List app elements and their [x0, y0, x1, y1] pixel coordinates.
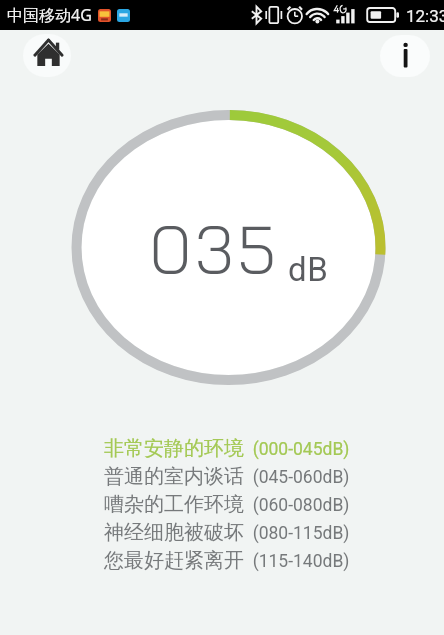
button[interactable]: Home: [23, 34, 71, 77]
staticText: 035: [149, 206, 280, 290]
button[interactable]: 普通的室内谈话 (045-060dB): [5, 462, 444, 490]
button[interactable]: 嘈杂的工作环境 (060-080dB): [5, 490, 444, 518]
staticText: 嘈杂的工作环境 (060-080dB): [104, 492, 350, 517]
button[interactable]: 您最好赶紧离开 (115-140dB): [5, 546, 444, 574]
staticText: 非常安静的环境 (000-045dB): [104, 436, 350, 461]
staticText: dB: [288, 250, 329, 289]
button[interactable]: 神经细胞被破坏 (080-115dB): [5, 518, 444, 546]
staticText: 中国移动4G: [7, 4, 92, 26]
staticText: 12:33: [406, 6, 444, 26]
staticText: 您最好赶紧离开 (115-140dB): [104, 548, 350, 573]
staticText: 普通的室内谈话 (045-060dB): [104, 464, 350, 489]
button[interactable]: Info: [380, 35, 430, 77]
staticText: 神经细胞被破坏 (080-115dB): [104, 520, 350, 545]
button[interactable]: 非常安静的环境 (000-045dB): [5, 434, 444, 462]
